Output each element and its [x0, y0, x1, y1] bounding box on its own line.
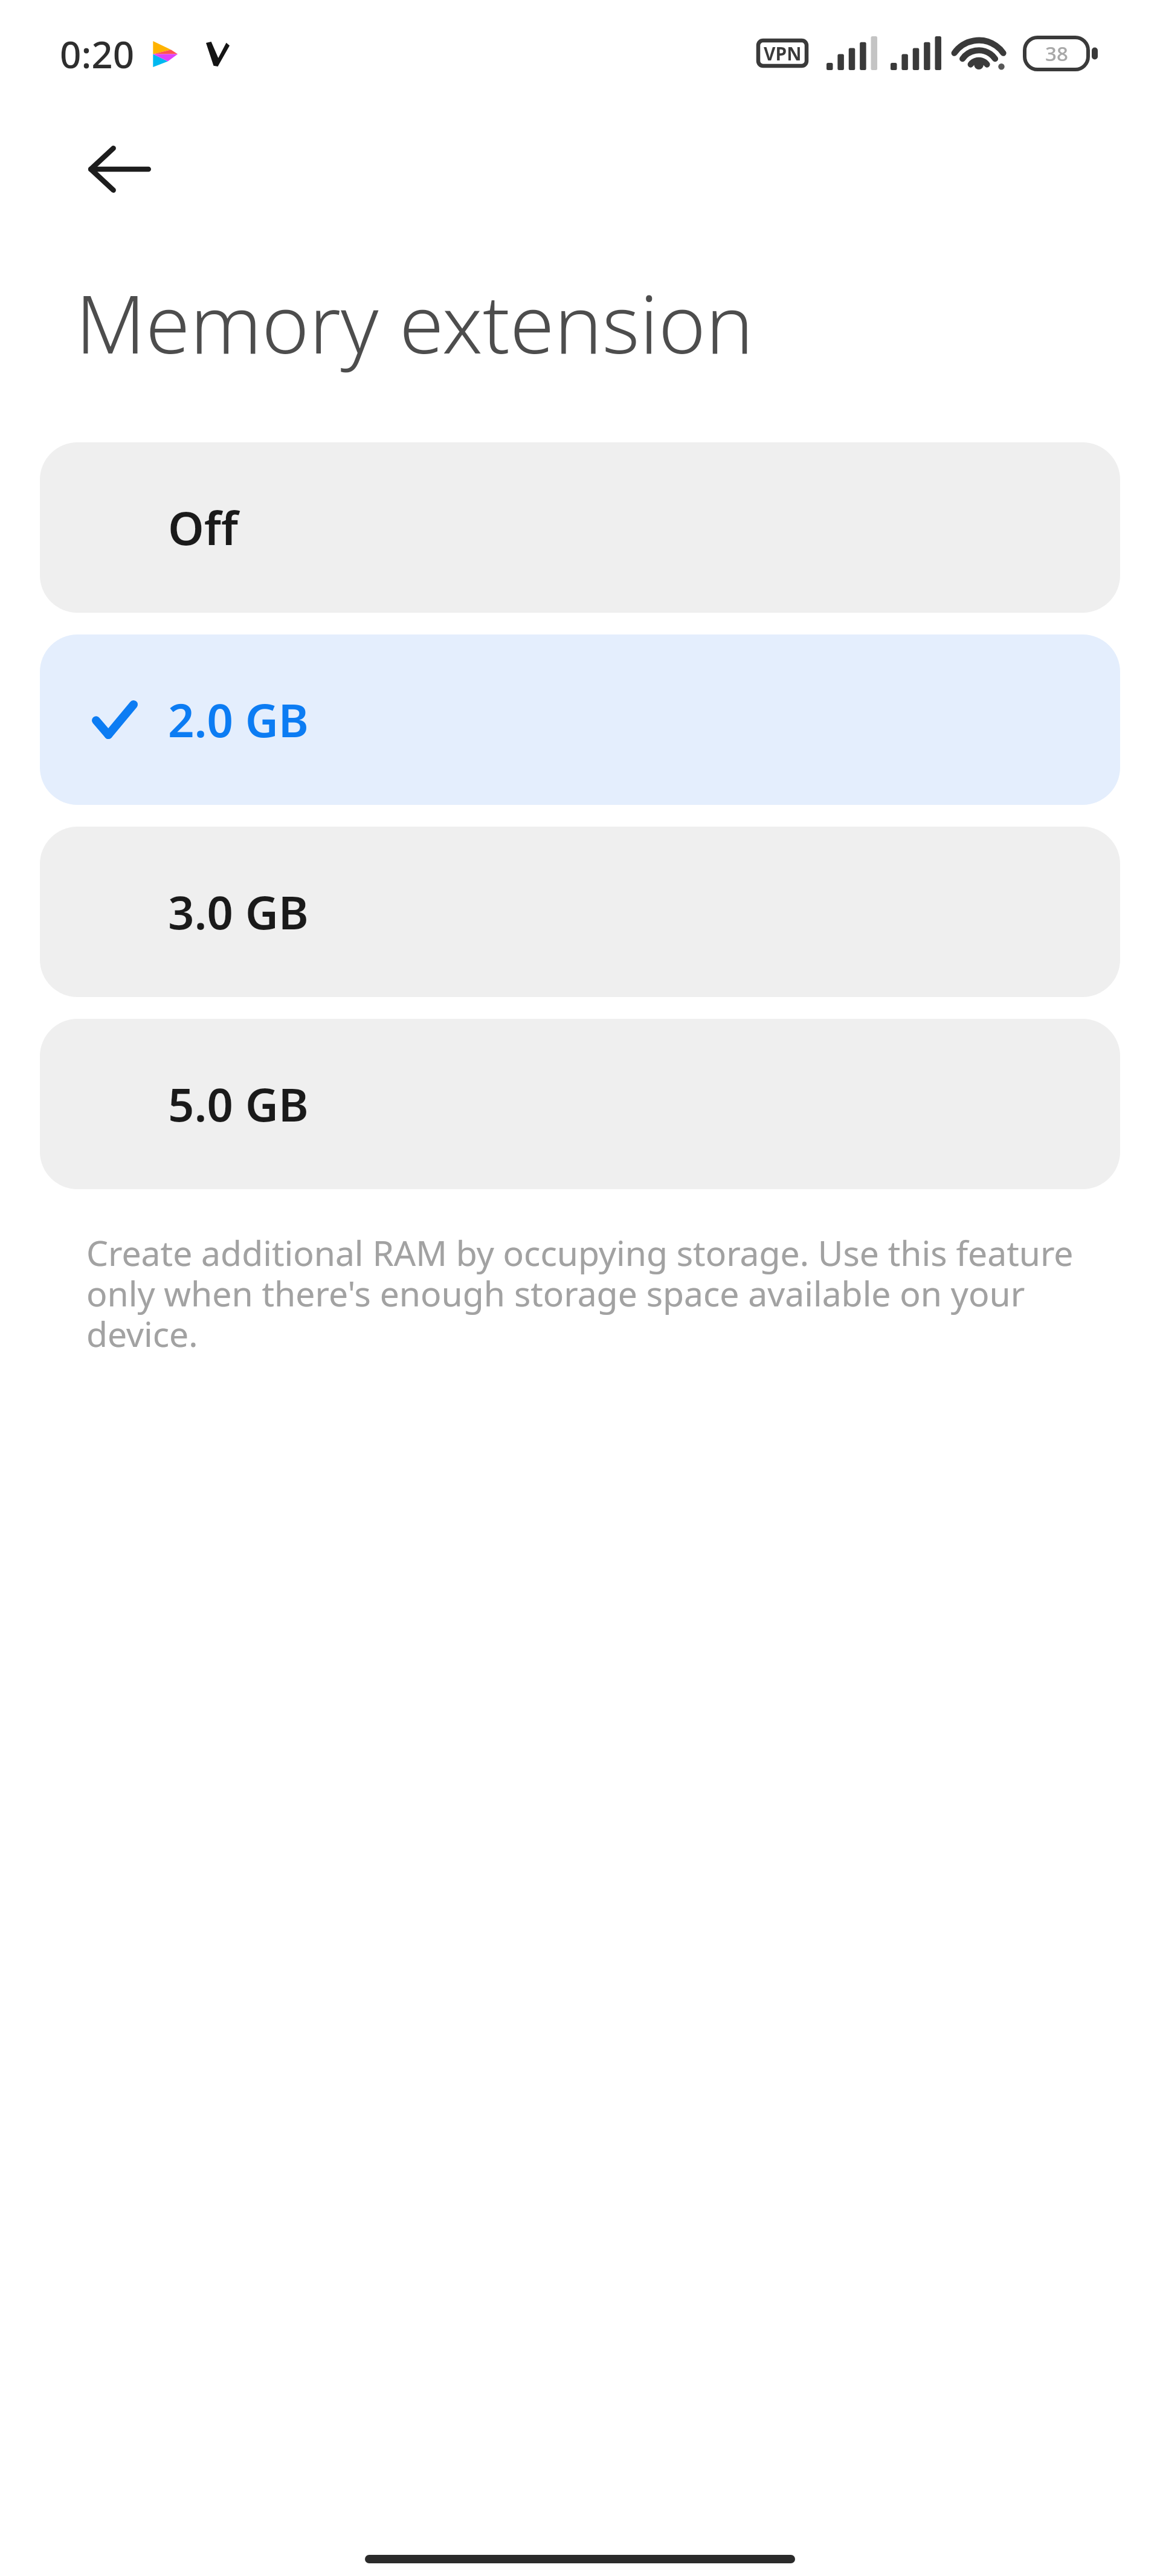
staticText: Create additional RAM by occupying stora…: [86, 1229, 1081, 1357]
button[interactable]: 3.0 GB: [40, 827, 1120, 997]
staticText: Memory extension: [76, 268, 754, 377]
staticText: 0:20: [60, 28, 135, 79]
staticText: 38: [1045, 40, 1068, 67]
staticText: Off: [168, 496, 239, 559]
staticText: 5.0 GB: [168, 1073, 309, 1135]
button[interactable]: 5.0 GB: [40, 1019, 1120, 1189]
staticText: VPN: [764, 41, 802, 66]
button[interactable]: Back: [70, 120, 169, 219]
button[interactable]: 2.0 GB: [40, 634, 1120, 805]
staticText: 3.0 GB: [168, 880, 309, 943]
staticText: 2.0 GB: [168, 688, 309, 751]
button[interactable]: Off: [40, 442, 1120, 613]
